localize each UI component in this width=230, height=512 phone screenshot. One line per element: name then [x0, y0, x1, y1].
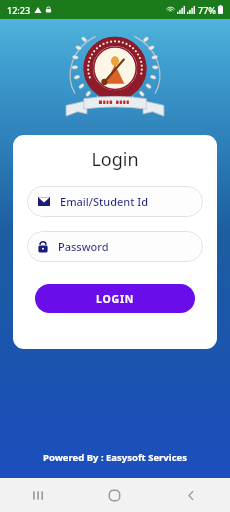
staticText: 77% — [198, 4, 216, 16]
staticText: Email/Student Id — [60, 194, 148, 209]
staticText: Powered By : Easysoft Services — [0, 451, 230, 464]
button[interactable]: LOGIN — [35, 284, 195, 313]
staticText: Password — [58, 239, 109, 254]
button[interactable]: Password — [27, 231, 203, 262]
staticText: LOGIN — [96, 292, 135, 306]
staticText: Login — [27, 147, 203, 172]
button[interactable]: Recent apps — [0, 478, 76, 512]
button[interactable]: Home — [76, 478, 153, 512]
staticText: 12:23 — [7, 4, 31, 16]
button[interactable]: Email/Student Id — [27, 186, 203, 217]
button[interactable]: Back — [153, 478, 230, 512]
